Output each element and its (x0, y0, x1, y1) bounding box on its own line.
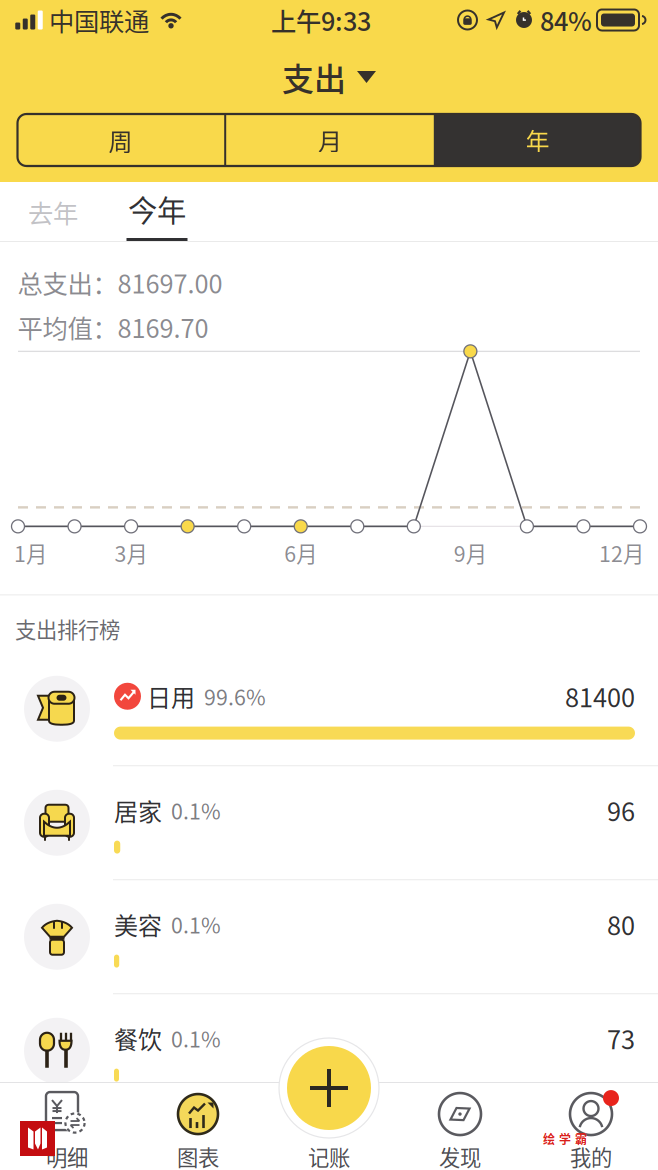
button[interactable]: 发现 (394, 1082, 525, 1170)
staticText: 今年 (128, 187, 186, 230)
staticText: 去年 (28, 194, 78, 230)
button[interactable]: 月 (226, 114, 434, 166)
staticText: 月 (318, 123, 342, 157)
staticText: 图表 (177, 1141, 219, 1170)
button[interactable]: 记账 (279, 1038, 379, 1138)
button[interactable]: 美容 (0, 880, 658, 994)
button[interactable]: 我的 (525, 1082, 656, 1170)
staticText: 84% (540, 2, 592, 38)
button[interactable]: 明细 (1, 1082, 132, 1170)
staticText: 绘 (543, 1130, 555, 1147)
staticText: 我的 (570, 1141, 612, 1170)
staticText: 总支出：81697.00 (17, 264, 222, 301)
staticText: 3月 (115, 537, 148, 568)
button[interactable]: 图表 (132, 1082, 263, 1170)
staticText: 上午9:33 (271, 2, 371, 38)
staticText: 支出排行榜 (15, 613, 120, 644)
staticText: 9月 (454, 537, 487, 568)
button[interactable]: 记账 (263, 1082, 394, 1170)
staticText: 周 (108, 123, 132, 157)
staticText: 年 (526, 123, 550, 157)
staticText: 日用 (147, 679, 195, 714)
button[interactable]: 去年 (15, 182, 91, 242)
staticText: 中国联通 (49, 2, 149, 38)
staticText: 6月 (284, 537, 317, 568)
staticText: 0.1% (171, 909, 221, 940)
button[interactable]: 今年 (119, 182, 195, 242)
button[interactable]: 日用 (0, 652, 658, 766)
staticText: 发现 (439, 1141, 481, 1170)
staticText: 73 (607, 1020, 635, 1057)
staticText: 餐饮 (114, 1021, 162, 1056)
staticText: 96 (607, 792, 635, 829)
staticText: 0.1% (171, 1023, 221, 1054)
staticText: 0.1% (171, 795, 221, 826)
staticText: 明细 (46, 1141, 88, 1170)
staticText: 记账 (308, 1141, 350, 1170)
staticText: 霸 (575, 1130, 587, 1147)
staticText: 学 (559, 1130, 571, 1147)
staticText: 12月 (599, 537, 644, 568)
staticText: 80 (607, 906, 635, 943)
button[interactable]: 餐饮 (0, 994, 658, 1108)
button[interactable]: 周 (17, 114, 224, 166)
staticText: 居家 (114, 793, 162, 828)
button[interactable]: 居家 (0, 766, 658, 880)
staticText: 支出 (282, 54, 346, 100)
button[interactable]: 年 (434, 114, 641, 166)
staticText: 美容 (114, 907, 162, 942)
button[interactable]: 支出 (282, 40, 376, 114)
staticText: 81400 (565, 678, 635, 715)
staticText: 99.6% (204, 681, 266, 712)
staticText: 平均值：8169.70 (17, 309, 208, 345)
staticText: 1月 (14, 537, 47, 568)
